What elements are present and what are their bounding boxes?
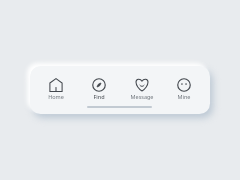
other: Home bbox=[48, 77, 64, 93]
button[interactable]: Home bbox=[35, 73, 77, 99]
other: Find bbox=[91, 77, 107, 93]
staticText: Mine bbox=[163, 93, 205, 100]
staticText: Message bbox=[121, 93, 163, 100]
other: Mine bbox=[176, 77, 192, 93]
other: Message bbox=[134, 77, 150, 93]
button[interactable]: Mine bbox=[163, 73, 205, 99]
staticText: Find bbox=[78, 93, 120, 100]
staticText: Home bbox=[35, 93, 77, 100]
button[interactable]: Message bbox=[121, 73, 163, 99]
button[interactable]: Find bbox=[78, 73, 120, 99]
